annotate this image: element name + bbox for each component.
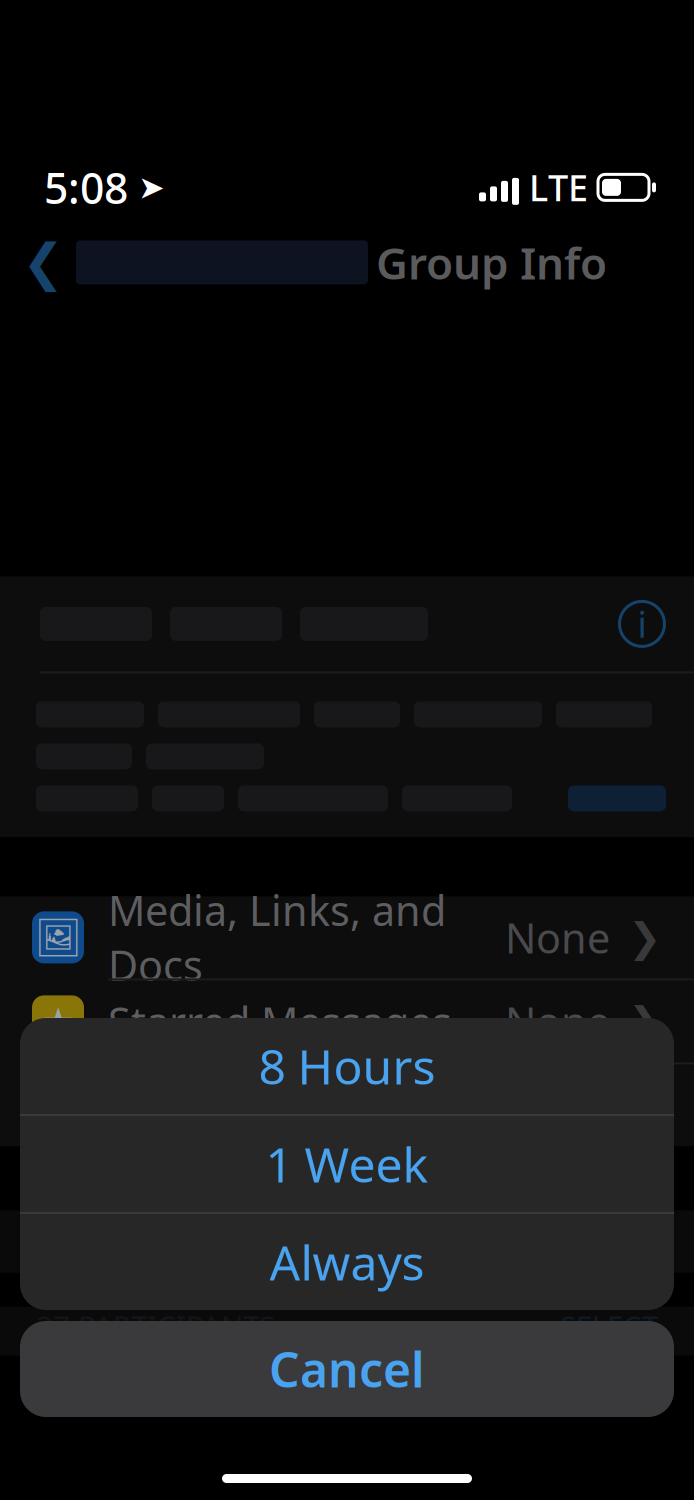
staticText: LTE bbox=[529, 163, 588, 211]
staticText: 🔍 bbox=[35, 1084, 81, 1127]
button[interactable]: 1 Week bbox=[20, 1116, 674, 1212]
staticText: 🖼 bbox=[34, 916, 81, 959]
button[interactable]: 🖼 bbox=[0, 896, 694, 980]
staticText: Chat Search bbox=[108, 1078, 340, 1133]
staticText: Learn more. bbox=[104, 1218, 295, 1263]
staticText: SELECT bbox=[560, 1307, 658, 1346]
button[interactable]: ★ bbox=[0, 980, 694, 1064]
staticText: ❯ bbox=[628, 1083, 662, 1128]
staticText: Starred Messages bbox=[108, 994, 452, 1049]
staticText: 27 PARTICIPANTS bbox=[36, 1307, 275, 1346]
staticText: Always bbox=[269, 1230, 424, 1294]
staticText: None bbox=[505, 910, 610, 965]
button[interactable]: 8 Hours bbox=[20, 1018, 674, 1114]
staticText: ❯ bbox=[628, 999, 662, 1044]
button[interactable]: Back bbox=[0, 230, 376, 294]
button[interactable]: 🔍 bbox=[0, 1064, 694, 1146]
staticText: ❯ bbox=[628, 915, 662, 960]
staticText: 5:08 bbox=[44, 159, 128, 216]
staticText: ❮ bbox=[22, 234, 64, 291]
staticText: ★ bbox=[41, 1000, 74, 1043]
staticText: Group Info bbox=[376, 233, 607, 292]
staticText: 8 Hours bbox=[258, 1034, 435, 1098]
staticText: 1 Week bbox=[265, 1132, 428, 1196]
button[interactable]: Cancel bbox=[20, 1321, 674, 1417]
staticText: None bbox=[505, 994, 610, 1049]
staticText: Media, Links, and Docs bbox=[108, 882, 446, 992]
button[interactable]: Group description info bbox=[608, 590, 676, 658]
staticText: Cancel bbox=[269, 1337, 425, 1401]
staticText: ➤ bbox=[138, 169, 165, 205]
button[interactable]: Always bbox=[20, 1214, 674, 1310]
staticText: i bbox=[637, 600, 646, 648]
